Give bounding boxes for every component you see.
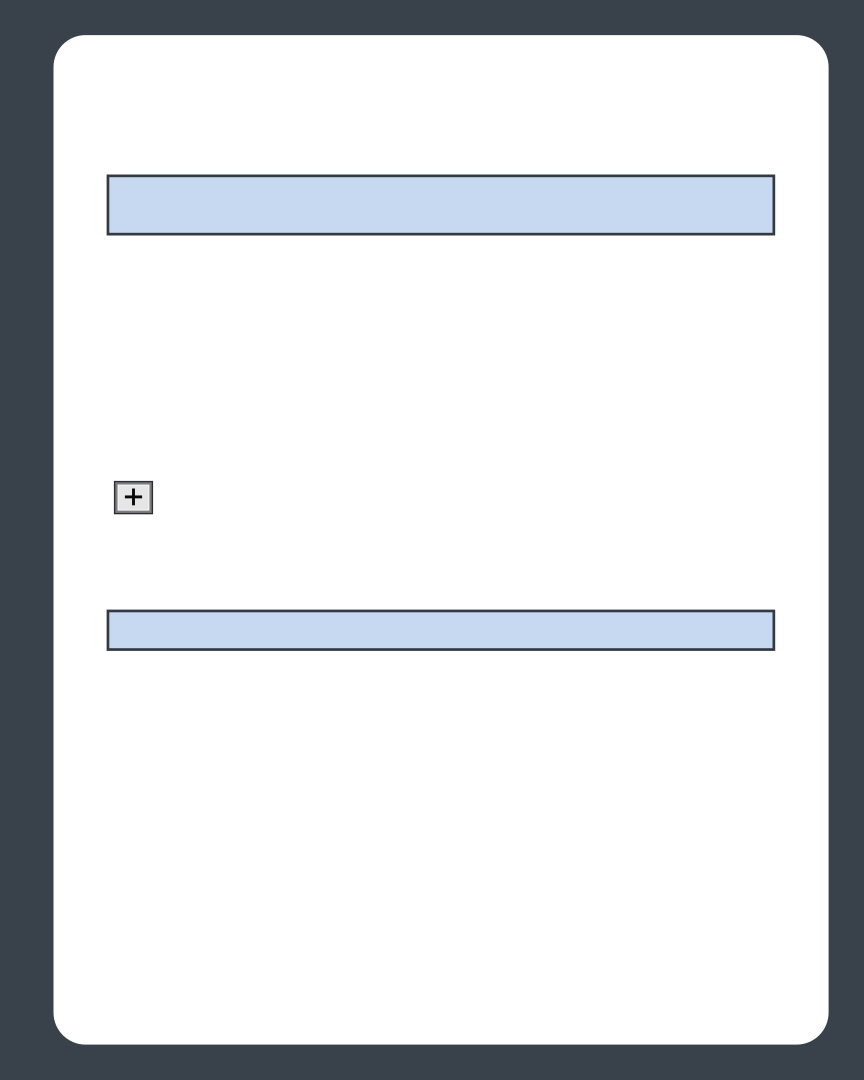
button[interactable]: Text field 2: [107, 610, 775, 651]
button[interactable]: Text field 1: [107, 174, 775, 235]
button[interactable]: Add: [114, 481, 153, 514]
